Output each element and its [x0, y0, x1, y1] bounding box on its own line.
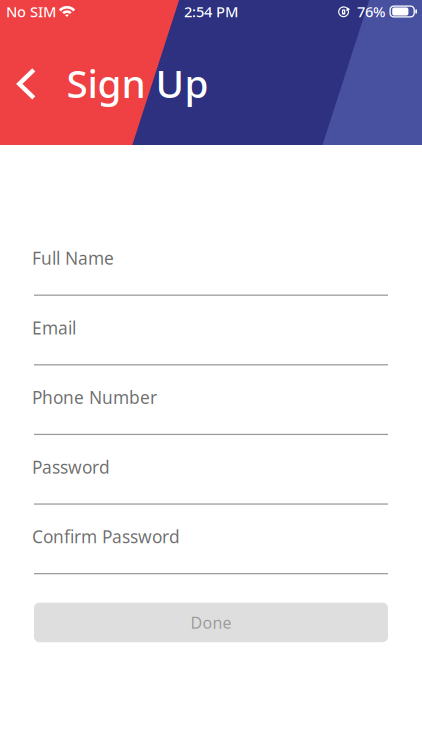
staticText: 2:54 PM — [184, 2, 238, 21]
staticText: Confirm Password — [32, 525, 180, 548]
button[interactable]: Done — [34, 603, 388, 642]
staticText: Done — [190, 612, 231, 633]
staticText: Password — [32, 455, 110, 478]
staticText: No SIM — [6, 2, 56, 21]
button[interactable]: Back — [6, 66, 47, 102]
staticText: 76% — [357, 2, 385, 21]
staticText: Sign Up — [66, 57, 208, 108]
staticText: Phone Number — [32, 386, 157, 409]
staticText: Email — [32, 316, 76, 339]
staticText: Full Name — [32, 247, 114, 270]
